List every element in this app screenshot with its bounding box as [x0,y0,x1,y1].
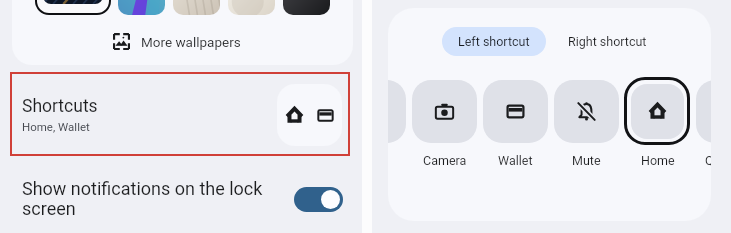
button[interactable]: More wallpapers [110,30,244,53]
staticText: Shortcuts [22,96,98,117]
button[interactable]: Shortcuts [12,74,353,155]
button[interactable]: Wallet [483,80,548,143]
button[interactable]: Wallpaper option [228,0,275,15]
staticText: Home, Wallet [22,120,90,133]
button[interactable]: Wallpaper option [118,0,165,15]
button[interactable]: Wallpaper option [283,0,330,15]
button[interactable]: Camera [412,80,477,143]
button[interactable]: Home [631,84,684,139]
button[interactable]: Current wallpaper [43,0,103,4]
staticText: Wallet [498,153,533,168]
button[interactable]: Show notifications on lock screen toggle [294,187,343,212]
button[interactable] [388,80,406,143]
staticText: Right shortcut [568,34,647,49]
button[interactable]: Show notifications on the lock screen [12,166,353,232]
staticText: Home [641,153,675,168]
staticText: Show notifications on the lock screen [22,178,280,220]
button[interactable]: Left shortcut [442,27,546,56]
staticText: More wallpapers [141,34,241,50]
button[interactable] [696,80,711,143]
staticText: Mute [572,153,601,168]
staticText: QR code [705,153,711,168]
staticText: Camera [423,153,467,168]
button[interactable]: Mute [554,80,619,143]
button[interactable]: Right shortcut [557,27,658,56]
button[interactable]: Wallpaper option [173,0,220,15]
staticText: Left shortcut [458,34,530,49]
